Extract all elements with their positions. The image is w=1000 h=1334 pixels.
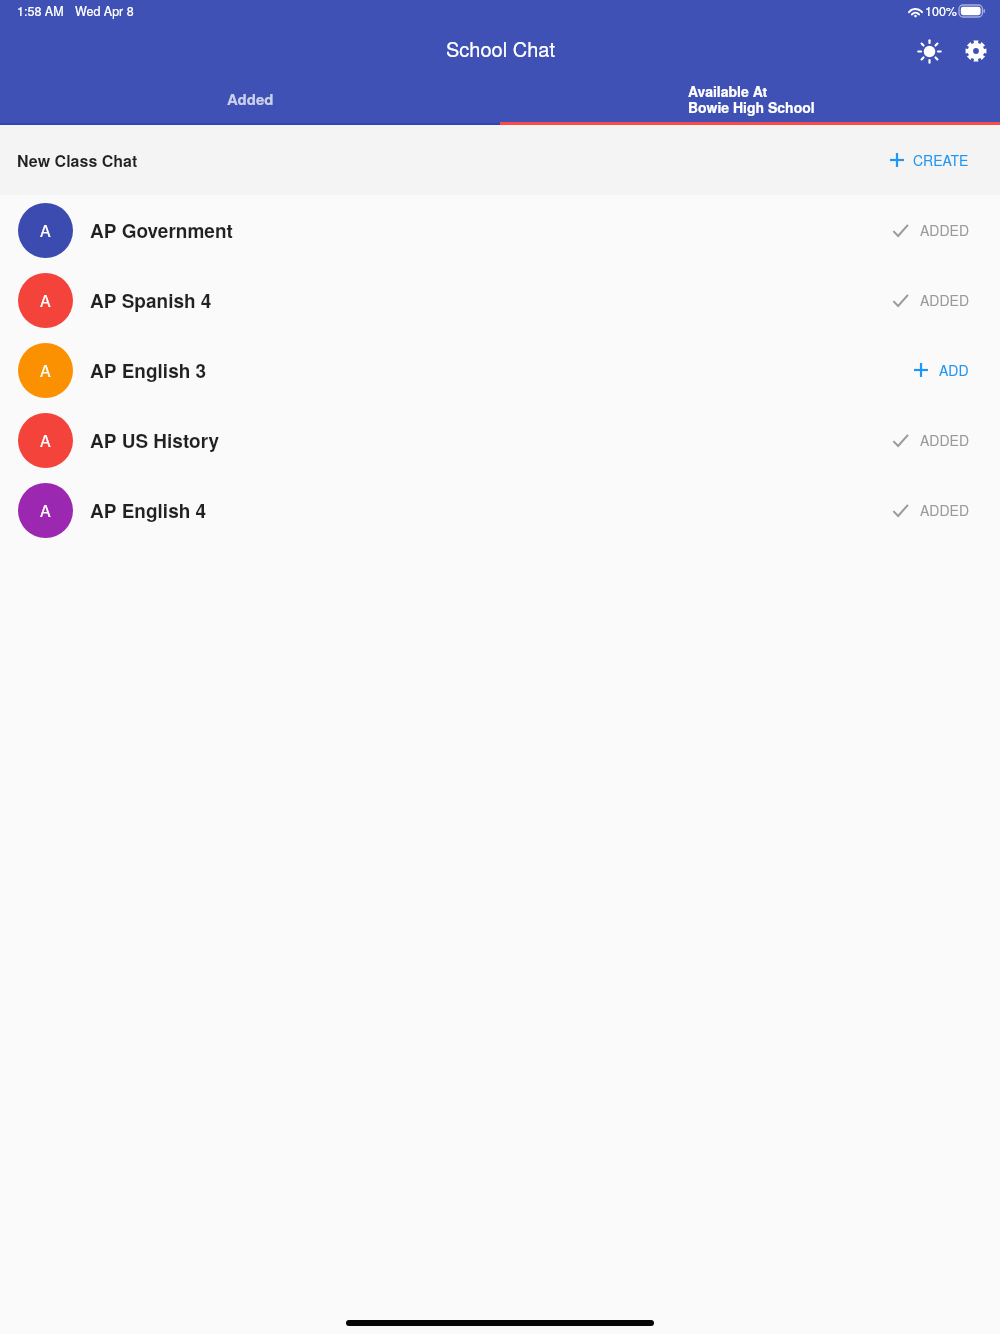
staticText: AP Spanish 4: [90, 287, 212, 314]
staticText: Wed Apr 8: [75, 2, 134, 20]
staticText: AP Government: [90, 217, 233, 244]
staticText: ADDED: [920, 500, 969, 520]
staticText: ADDED: [920, 290, 969, 310]
button[interactable]: A: [0, 265, 1000, 335]
staticText: Available At Bowie High School: [688, 81, 815, 117]
staticText: New Class Chat: [17, 149, 138, 172]
staticText: School Chat: [446, 34, 555, 63]
staticText: A: [40, 289, 51, 312]
staticText: ADDED: [920, 430, 969, 450]
button[interactable]: A: [0, 475, 1000, 545]
staticText: A: [40, 429, 51, 452]
staticText: ADD: [939, 360, 969, 380]
staticText: A: [40, 499, 51, 522]
staticText: AP English 3: [90, 357, 207, 384]
staticText: 1:58 AM: [17, 2, 64, 20]
button[interactable]: A: [0, 335, 1000, 405]
button[interactable]: CREATE: [874, 140, 1000, 180]
staticText: A: [40, 359, 51, 382]
staticText: 100%: [925, 2, 957, 20]
staticText: CREATE: [913, 150, 969, 170]
staticText: ADDED: [920, 220, 969, 240]
button[interactable]: Settings: [952, 27, 1000, 75]
button[interactable]: Added: [0, 78, 500, 125]
button[interactable]: Available At Bowie High School: [500, 78, 1000, 125]
button[interactable]: Brightness: [905, 27, 953, 75]
staticText: A: [40, 219, 51, 242]
button[interactable]: A: [0, 195, 1000, 265]
staticText: AP English 4: [90, 497, 207, 524]
staticText: Added: [227, 88, 274, 109]
button[interactable]: ADD: [898, 348, 1000, 392]
staticText: AP US History: [90, 427, 220, 454]
button[interactable]: A: [0, 405, 1000, 475]
